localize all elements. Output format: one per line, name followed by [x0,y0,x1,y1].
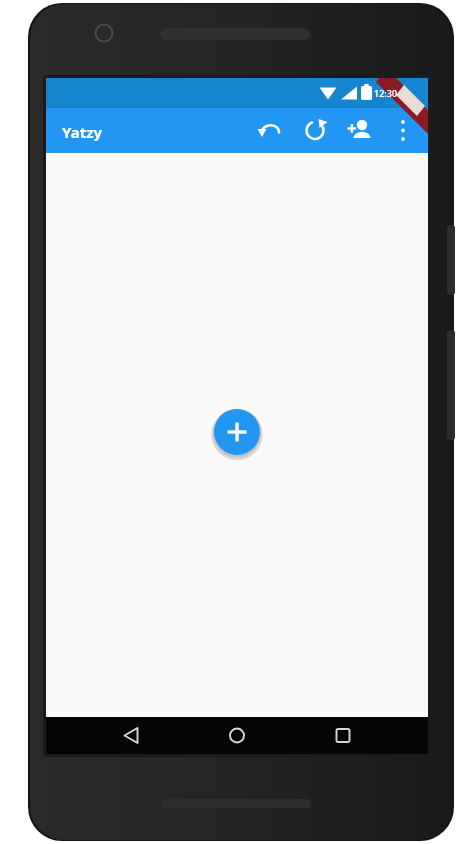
button[interactable]: Undo [252,110,288,155]
staticText: 12:30 [374,87,398,99]
button[interactable]: Recent apps [320,717,366,754]
button[interactable]: Home [214,717,260,754]
button[interactable]: Redo [297,110,333,155]
button[interactable]: More options [387,110,419,155]
button[interactable]: Back [108,717,154,754]
staticText: Yatzy [62,122,103,142]
button[interactable]: New game [214,409,260,455]
button[interactable]: Add player [343,110,379,155]
